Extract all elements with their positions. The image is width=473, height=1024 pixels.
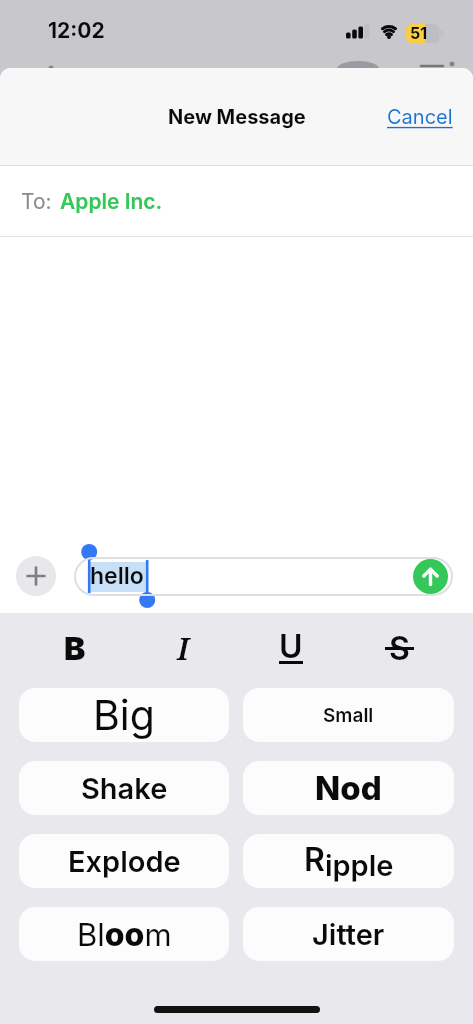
staticText: Apple Inc. bbox=[60, 189, 163, 214]
button[interactable]: I bbox=[129, 613, 237, 683]
button[interactable]: Ripple bbox=[243, 834, 454, 888]
button[interactable]: B bbox=[20, 613, 129, 683]
staticText: Explode bbox=[68, 844, 181, 879]
button[interactable]: Explode bbox=[19, 834, 229, 888]
button[interactable]: Shake bbox=[19, 761, 229, 815]
staticText: Big bbox=[93, 690, 155, 740]
button[interactable]: Small bbox=[243, 688, 454, 742]
button[interactable]: Jitter bbox=[243, 907, 454, 961]
staticText: New Message bbox=[168, 105, 306, 129]
staticText: I bbox=[177, 627, 190, 669]
button[interactable]: Nod bbox=[243, 761, 454, 815]
staticText: Bloom bbox=[77, 915, 172, 954]
staticText: 12:02 bbox=[48, 18, 105, 43]
button[interactable] bbox=[413, 559, 448, 594]
button[interactable] bbox=[16, 556, 56, 596]
button[interactable]: Big bbox=[19, 688, 229, 742]
staticText: 51 bbox=[410, 23, 428, 42]
staticText: To: bbox=[21, 189, 52, 214]
staticText: S bbox=[389, 629, 410, 668]
button[interactable]: U bbox=[237, 613, 345, 683]
staticText: Small bbox=[323, 704, 374, 727]
button[interactable]: To: bbox=[0, 166, 473, 236]
staticText: hello bbox=[90, 562, 144, 590]
staticText: Ripple bbox=[304, 840, 394, 882]
staticText: U bbox=[279, 627, 303, 666]
staticText: Shake bbox=[81, 771, 168, 806]
staticText: Jitter bbox=[312, 917, 385, 952]
staticText: B bbox=[64, 629, 86, 668]
button[interactable]: Bloom bbox=[19, 907, 229, 961]
staticText: Nod bbox=[315, 768, 382, 808]
button[interactable]: S bbox=[345, 613, 453, 683]
button[interactable]: Cancel bbox=[387, 105, 453, 129]
staticText: Cancel bbox=[387, 105, 453, 129]
